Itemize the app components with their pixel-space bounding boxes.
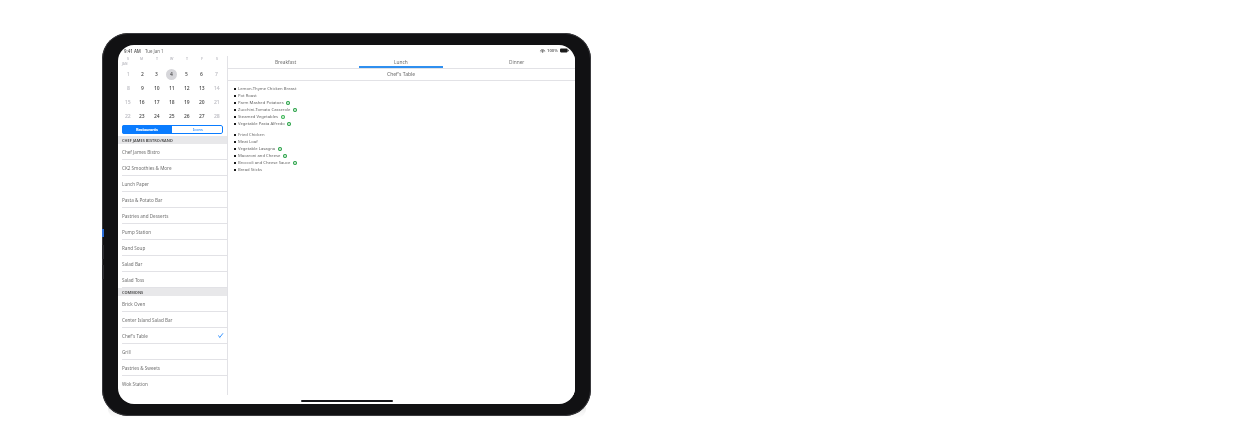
- button[interactable]: 25: [164, 109, 179, 123]
- staticText: 25: [169, 113, 175, 120]
- staticText: S: [127, 56, 129, 61]
- button[interactable]: Grill: [118, 344, 227, 359]
- button[interactable]: 10: [149, 81, 164, 95]
- staticText: JAN: [122, 62, 128, 66]
- button[interactable]: Center Island Salad Bar: [118, 312, 227, 327]
- button[interactable]: 7: [209, 67, 224, 81]
- button[interactable]: Pastries and Desserts: [118, 208, 227, 223]
- button[interactable]: 19: [179, 95, 194, 109]
- button[interactable]: 11: [164, 81, 179, 95]
- button[interactable]: 4: [164, 67, 179, 81]
- button[interactable]: 13: [194, 81, 209, 95]
- staticText: 1: [127, 71, 130, 78]
- button[interactable]: 24: [149, 109, 164, 123]
- button[interactable]: Salad Toss: [118, 272, 227, 287]
- button[interactable]: Salad Bar: [118, 256, 227, 271]
- button[interactable]: 17: [149, 95, 164, 109]
- staticText: Vegetable Pasta Alfredo: [238, 121, 285, 127]
- staticText: Pasta & Potato Bar: [122, 197, 163, 203]
- button[interactable]: 8: [121, 81, 135, 95]
- staticText: Vegetable Lasagna: [238, 146, 276, 152]
- button[interactable]: 20: [194, 95, 209, 109]
- staticText: 28: [214, 113, 220, 120]
- staticText: Restaurants: [136, 127, 158, 132]
- staticText: 3: [155, 71, 158, 78]
- staticText: Salad Toss: [122, 277, 145, 283]
- staticText: 4: [170, 71, 173, 78]
- button[interactable]: 21: [209, 95, 224, 109]
- button[interactable]: 16: [135, 95, 149, 109]
- staticText: 16: [139, 99, 145, 106]
- button[interactable]: Wok Station: [118, 376, 227, 391]
- staticText: T: [186, 56, 188, 61]
- staticText: 6: [200, 71, 203, 78]
- staticText: T: [156, 56, 158, 61]
- staticText: 22: [125, 113, 131, 120]
- staticText: Chef's Table: [122, 333, 148, 339]
- button[interactable]: 1: [121, 67, 135, 81]
- button[interactable]: 22: [121, 109, 135, 123]
- staticText: 18: [169, 99, 175, 106]
- staticText: Fried Chicken: [238, 132, 265, 138]
- button[interactable]: Pastries & Sweets: [118, 360, 227, 375]
- button[interactable]: 3: [149, 67, 164, 81]
- button[interactable]: Breakfast: [228, 56, 343, 68]
- button[interactable]: 2: [135, 67, 149, 81]
- staticText: 9:41 AM: [124, 48, 141, 54]
- button[interactable]: Brick Oven: [118, 296, 227, 311]
- other: Selected: [218, 333, 223, 338]
- staticText: COMMONS: [122, 290, 144, 295]
- button[interactable]: 6: [194, 67, 209, 81]
- button[interactable]: 28: [209, 109, 224, 123]
- staticText: 10: [154, 85, 160, 92]
- button[interactable]: Dinner: [459, 56, 575, 68]
- staticText: 8: [127, 85, 130, 92]
- button[interactable]: 23: [135, 109, 149, 123]
- button[interactable]: 15: [121, 95, 135, 109]
- button[interactable]: 26: [179, 109, 194, 123]
- staticText: 23: [139, 113, 145, 120]
- staticText: Broccoli and Cheese Sauce: [238, 160, 291, 166]
- staticText: CK2 Smoothies & More: [122, 165, 172, 171]
- button[interactable]: Rand Soup: [118, 240, 227, 255]
- button[interactable]: 5: [179, 67, 194, 81]
- button[interactable]: Chef James Bistro: [118, 144, 227, 159]
- button[interactable]: Pump Station: [118, 224, 227, 239]
- other: Dietary badge: [286, 101, 290, 105]
- button[interactable]: Lunch: [343, 56, 459, 68]
- button[interactable]: Icons: [172, 125, 223, 134]
- staticText: Wok Station: [122, 381, 148, 387]
- staticText: Grill: [122, 349, 131, 355]
- button[interactable]: 27: [194, 109, 209, 123]
- staticText: 7: [215, 71, 218, 78]
- button[interactable]: 12: [179, 81, 194, 95]
- staticText: 2: [141, 71, 144, 78]
- staticText: M: [140, 56, 144, 61]
- button[interactable]: 18: [164, 95, 179, 109]
- staticText: Zucchini-Tomato Casserole: [238, 107, 291, 113]
- staticText: CHEF JAMES BISTRO/RAND: [122, 138, 173, 143]
- other: Dietary badge: [278, 147, 282, 151]
- staticText: 15: [125, 99, 131, 106]
- staticText: Pastries & Sweets: [122, 365, 161, 371]
- staticText: 12: [184, 85, 190, 92]
- staticText: Pastries and Desserts: [122, 213, 169, 219]
- button[interactable]: CK2 Smoothies & More: [118, 160, 227, 175]
- button[interactable]: Chef's Table: [118, 328, 227, 343]
- staticText: 14: [214, 85, 220, 92]
- button[interactable]: Pasta & Potato Bar: [118, 192, 227, 207]
- other: Dietary badge: [287, 122, 291, 126]
- staticText: F: [201, 56, 203, 61]
- button[interactable]: 9: [135, 81, 149, 95]
- button[interactable]: 14: [209, 81, 224, 95]
- staticText: Meat Loaf: [238, 139, 258, 145]
- staticText: Parm Mashed Potatoes: [238, 100, 284, 106]
- button[interactable]: Lunch Paper: [118, 176, 227, 191]
- staticText: 13: [199, 85, 205, 92]
- staticText: Dinner: [509, 59, 525, 66]
- button[interactable]: Restaurants: [122, 125, 172, 134]
- staticText: W: [170, 56, 174, 61]
- other: Dietary badge: [281, 115, 285, 119]
- staticText: 20: [199, 99, 205, 106]
- staticText: 24: [154, 113, 160, 120]
